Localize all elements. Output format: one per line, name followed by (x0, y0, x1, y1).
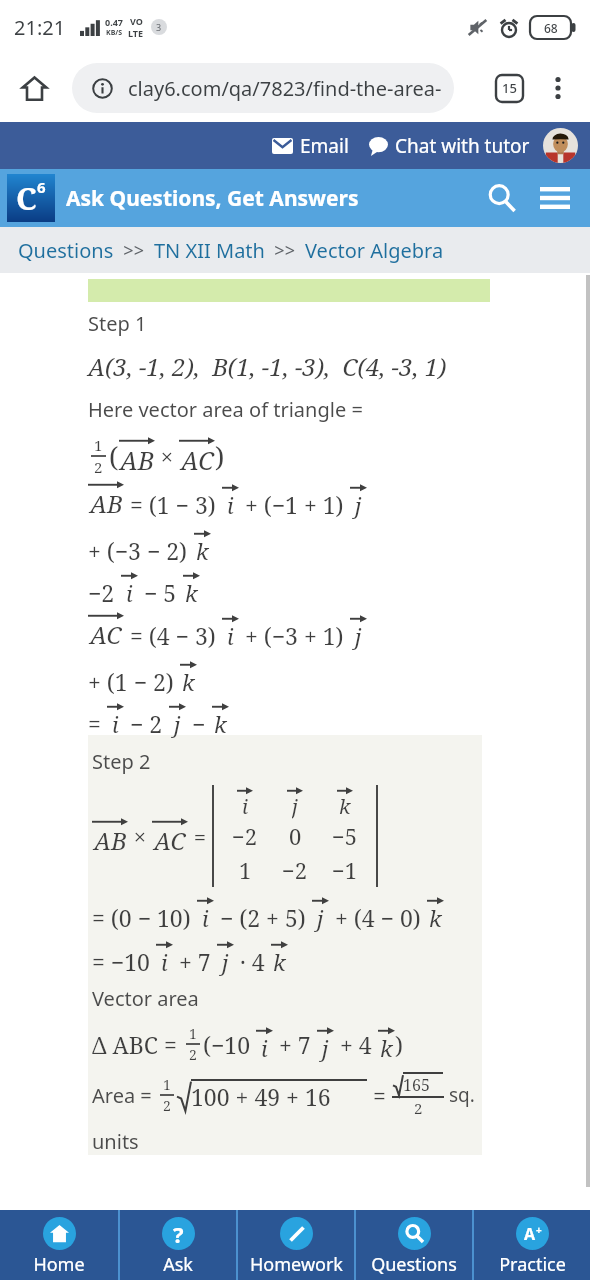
staticText: AB (90, 487, 123, 520)
staticText: − 2 (124, 708, 169, 739)
staticText: 21:21 (14, 14, 66, 41)
button[interactable]: Profile (543, 128, 578, 163)
staticText: Questions (371, 1252, 457, 1277)
button[interactable]: Chat with tutor (365, 129, 534, 163)
staticText: Homework (250, 1252, 343, 1277)
staticText: 2 (189, 1045, 197, 1064)
staticText: i (227, 621, 234, 651)
staticText: 1 (189, 1024, 197, 1043)
staticText: ) (215, 438, 225, 475)
staticText: sq. (444, 1082, 475, 1108)
staticText: 3 (156, 21, 162, 33)
staticText: = −10 (92, 946, 156, 977)
button[interactable]: Search (480, 176, 524, 220)
staticText: 6 (37, 177, 46, 197)
staticText: j (355, 490, 362, 520)
staticText: j (174, 709, 181, 739)
staticText: + (−1 + 1) (239, 489, 350, 520)
button[interactable]: Home (11, 65, 57, 111)
button[interactable]: Home (0, 1210, 118, 1280)
staticText: + 7 (173, 946, 217, 977)
staticText: j (355, 621, 362, 651)
button[interactable]: A (474, 1210, 590, 1280)
staticText: = (88, 708, 107, 739)
staticText: × (155, 441, 179, 471)
staticText: AC (90, 618, 122, 651)
staticText: −2 (88, 577, 121, 608)
staticText: −2 (282, 855, 308, 885)
staticText: + (−3 − 2) (88, 535, 194, 566)
staticText: clay6.com/qa/7823/find-the-area-of (128, 75, 454, 102)
staticText: 2 (94, 457, 103, 477)
staticText: 68 (544, 20, 558, 36)
staticText: − (2 + 5) (214, 902, 312, 933)
staticText: ( (109, 438, 119, 475)
staticText: k (273, 947, 286, 977)
button[interactable]: Vector Algebra (305, 237, 444, 264)
staticText: Area = (92, 1082, 157, 1109)
button[interactable]: Menu (532, 175, 578, 221)
staticText: Practice (499, 1252, 566, 1277)
staticText: LTE (128, 27, 144, 39)
button[interactable]: Homework (238, 1210, 354, 1280)
button[interactable]: ? (120, 1210, 236, 1280)
staticText: k (185, 578, 198, 608)
staticText: Home (33, 1252, 85, 1277)
staticText: Ask Questions, Get Answers (66, 184, 359, 213)
staticText: k (380, 1033, 393, 1063)
button[interactable]: More options (536, 66, 580, 110)
button[interactable]: Clay6 home (7, 174, 55, 222)
staticText: units (92, 1128, 139, 1155)
staticText: − (186, 708, 212, 739)
staticText: j (292, 793, 298, 819)
staticText: Vector area (92, 985, 199, 1012)
staticText: −5 (332, 821, 358, 851)
staticText: Step 1 (88, 310, 147, 337)
staticText: × (128, 821, 152, 851)
button[interactable]: clay6.com/qa/7823/find-the-area-of (72, 63, 454, 113)
staticText: A(3, −1, 2), B(1, −1, −3), C(4, −3, 1) (88, 350, 447, 383)
staticText: ? (173, 1219, 184, 1249)
staticText: = (0 − 10) (92, 902, 197, 933)
button[interactable]: Questions (356, 1210, 472, 1280)
staticText: 0.47 (105, 16, 123, 28)
staticText: Chat with tutor (395, 133, 530, 159)
staticText: 165 (403, 1074, 430, 1096)
staticText: k (214, 709, 227, 739)
staticText: >> (114, 238, 154, 263)
staticText: j (222, 947, 229, 977)
staticText: 100 + 49 + 16 (191, 1081, 331, 1112)
staticText: >> (265, 238, 305, 263)
button[interactable]: Questions (18, 237, 114, 264)
staticText: 0 (289, 821, 302, 851)
staticText: k (429, 903, 442, 933)
staticText: + (1 − 2) (88, 666, 180, 697)
staticText: k (339, 793, 351, 819)
staticText: −1 (332, 855, 358, 885)
button[interactable]: Tabs (488, 67, 530, 109)
staticText: i (242, 793, 249, 819)
staticText: + (536, 1223, 542, 1237)
staticText: i (227, 490, 234, 520)
staticText: + (−3 + 1) (239, 620, 350, 651)
staticText: 15 (502, 79, 517, 97)
staticText: + 7 (273, 1029, 317, 1060)
staticText: ) (395, 1029, 403, 1060)
staticText: 1 (239, 855, 252, 885)
staticText: i (261, 1033, 268, 1063)
staticText: 1 (94, 435, 103, 455)
staticText: C (16, 177, 37, 219)
staticText: + 4 (334, 1029, 378, 1060)
staticText: A (524, 1223, 536, 1245)
button[interactable]: TN XII Math (154, 237, 265, 264)
staticText: 2 (163, 1096, 171, 1115)
staticText: · 4 (234, 946, 271, 977)
staticText: k (182, 667, 195, 697)
button[interactable]: Email (268, 129, 353, 163)
staticText: AC (181, 443, 214, 477)
staticText: AC (154, 824, 186, 857)
staticText: j (317, 903, 324, 933)
staticText: VO (130, 15, 143, 27)
staticText: Email (300, 133, 349, 159)
staticText: + (4 − 0) (329, 902, 427, 933)
